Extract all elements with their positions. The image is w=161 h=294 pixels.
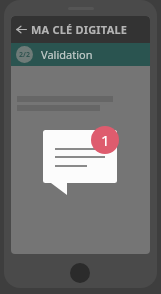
- staticText: 1: [101, 130, 110, 150]
- staticText: 2/2: [19, 50, 30, 60]
- staticText: Validation: [41, 47, 93, 62]
- button[interactable]: 2/2: [11, 43, 150, 66]
- button[interactable]: Home: [70, 263, 90, 283]
- button[interactable]: Back: [11, 16, 31, 43]
- button[interactable]: Message notification: [43, 130, 118, 195]
- staticText: MA CLÉ DIGITALE: [31, 22, 128, 37]
